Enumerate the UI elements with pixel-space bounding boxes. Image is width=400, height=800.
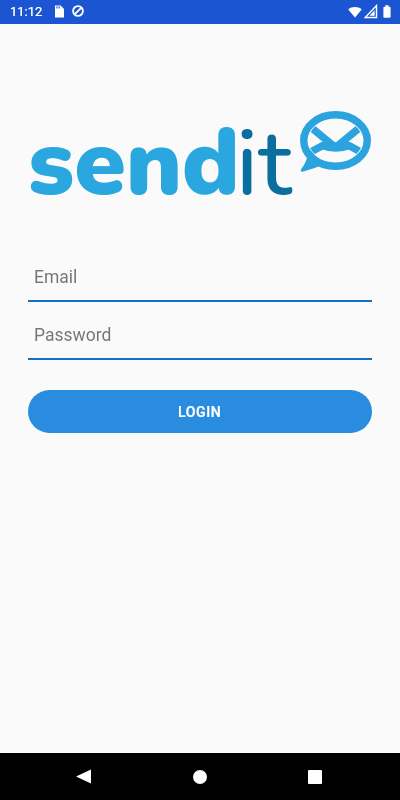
staticText: 11:12 [10, 4, 43, 19]
button[interactable]: Home [176, 753, 224, 800]
button[interactable]: LOGIN [28, 390, 372, 433]
staticText: it [236, 100, 292, 227]
staticText: send [28, 100, 240, 227]
staticText: Password [34, 325, 112, 346]
button[interactable]: Recent apps [291, 753, 339, 800]
button[interactable]: Back [59, 753, 107, 800]
staticText: Email [34, 267, 78, 288]
staticText: LOGIN [178, 404, 222, 420]
button[interactable]: Email [28, 262, 372, 302]
button[interactable]: Password [28, 320, 372, 360]
